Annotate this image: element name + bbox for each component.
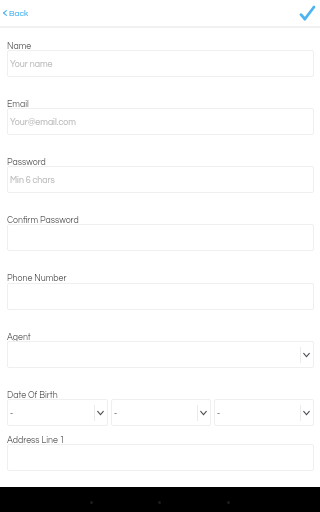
button[interactable]: Your@email.com (7, 108, 314, 135)
button[interactable] (7, 283, 314, 310)
staticText: Name (7, 42, 32, 51)
button[interactable]: Your name (7, 50, 314, 77)
button[interactable]: Back (0, 0, 39, 26)
button[interactable]: Submit (294, 0, 320, 26)
staticText: Confirm Password (7, 216, 79, 225)
button[interactable] (7, 444, 314, 471)
button[interactable] (7, 224, 314, 251)
button[interactable]: Select (7, 341, 314, 368)
staticText: Your name (10, 60, 53, 69)
button[interactable]: Select (214, 399, 314, 426)
staticText: Date Of Birth (7, 391, 58, 400)
button[interactable]: Min 6 chars (7, 166, 314, 193)
staticText: Address Line 1 (7, 436, 65, 445)
button[interactable]: Select (111, 399, 211, 426)
staticText: - (10, 409, 14, 418)
staticText: Agent (7, 333, 31, 342)
staticText: Back (9, 9, 29, 18)
staticText: - (217, 409, 221, 418)
button[interactable]: Select (7, 399, 108, 426)
staticText: Password (7, 158, 46, 167)
staticText: Phone Number (7, 274, 67, 283)
staticText: Your@email.com (10, 118, 76, 127)
staticText: - (114, 409, 118, 418)
staticText: Email (7, 100, 29, 109)
staticText: Min 6 chars (10, 176, 55, 185)
